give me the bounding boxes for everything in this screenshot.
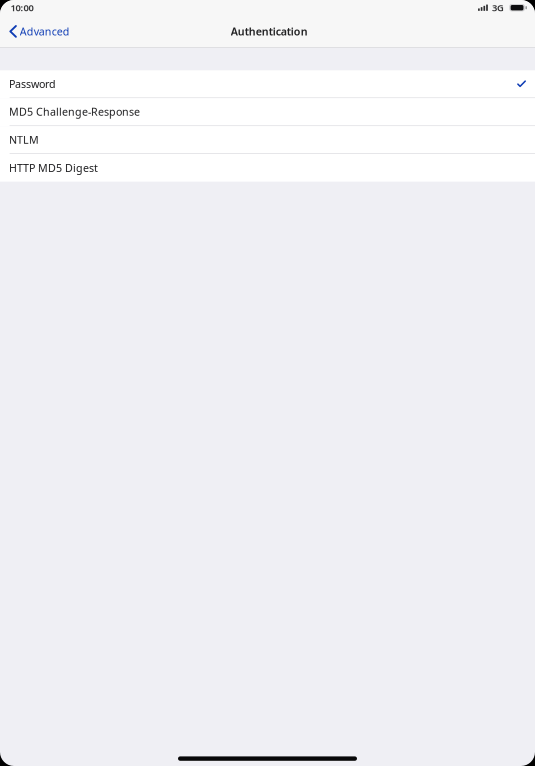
- staticText: Advanced: [20, 24, 70, 38]
- button[interactable]: Password: [0, 70, 535, 98]
- button[interactable]: Advanced: [0, 15, 79, 47]
- button[interactable]: HTTP MD5 Digest: [0, 154, 535, 182]
- staticText: MD5 Challenge-Response: [9, 105, 140, 119]
- button[interactable]: NTLM: [0, 126, 535, 154]
- staticText: Authentication: [231, 24, 308, 38]
- staticText: NTLM: [9, 132, 39, 147]
- staticText: HTTP MD5 Digest: [9, 161, 98, 175]
- staticText: 10:00: [10, 1, 33, 14]
- button[interactable]: MD5 Challenge-Response: [0, 98, 535, 126]
- staticText: 3G: [492, 1, 504, 14]
- staticText: Password: [9, 77, 56, 91]
